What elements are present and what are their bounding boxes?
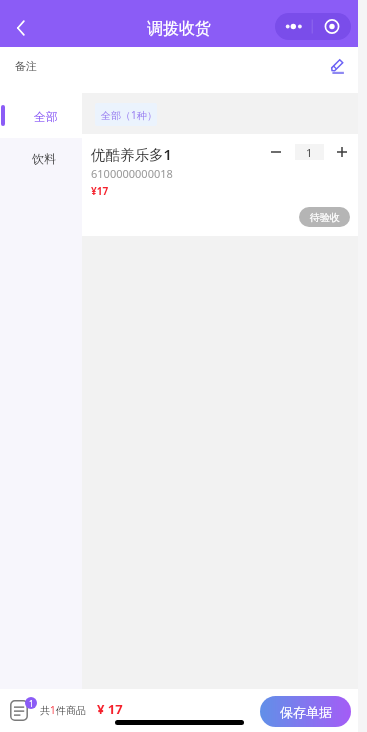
button[interactable]: Edit remark	[328, 56, 346, 74]
button[interactable]: Menu	[275, 13, 351, 40]
staticText: 全部（1种）	[101, 108, 157, 122]
button[interactable]: 待验收	[299, 207, 350, 227]
staticText: 全部	[34, 109, 58, 124]
button[interactable]: 全部（1种）	[95, 103, 157, 126]
staticText: ¥ 17	[97, 700, 123, 718]
button[interactable]: Order summary	[10, 699, 32, 721]
staticText: 优酷养乐多1	[91, 144, 172, 164]
staticText: 备注	[15, 59, 37, 73]
staticText: 1	[29, 698, 34, 709]
button[interactable]: Back	[4, 11, 38, 45]
staticText: 调拨收货	[147, 19, 211, 39]
button[interactable]: 全部	[0, 93, 82, 138]
button[interactable]: 保存单据	[260, 696, 351, 727]
staticText: 待验收	[310, 211, 340, 224]
staticText: 1	[50, 703, 56, 717]
staticText: 件商品	[56, 704, 86, 717]
button[interactable]: Increase quantity	[331, 144, 353, 160]
staticText: 1	[306, 145, 313, 160]
staticText: 共	[40, 704, 50, 717]
staticText: 保存单据	[280, 704, 332, 720]
staticText: 6100000000018	[91, 166, 173, 181]
button[interactable]: Decrease quantity	[265, 144, 287, 160]
button[interactable]: 饮料	[0, 138, 82, 181]
staticText: ¥17	[91, 184, 109, 198]
staticText: 饮料	[32, 151, 56, 166]
